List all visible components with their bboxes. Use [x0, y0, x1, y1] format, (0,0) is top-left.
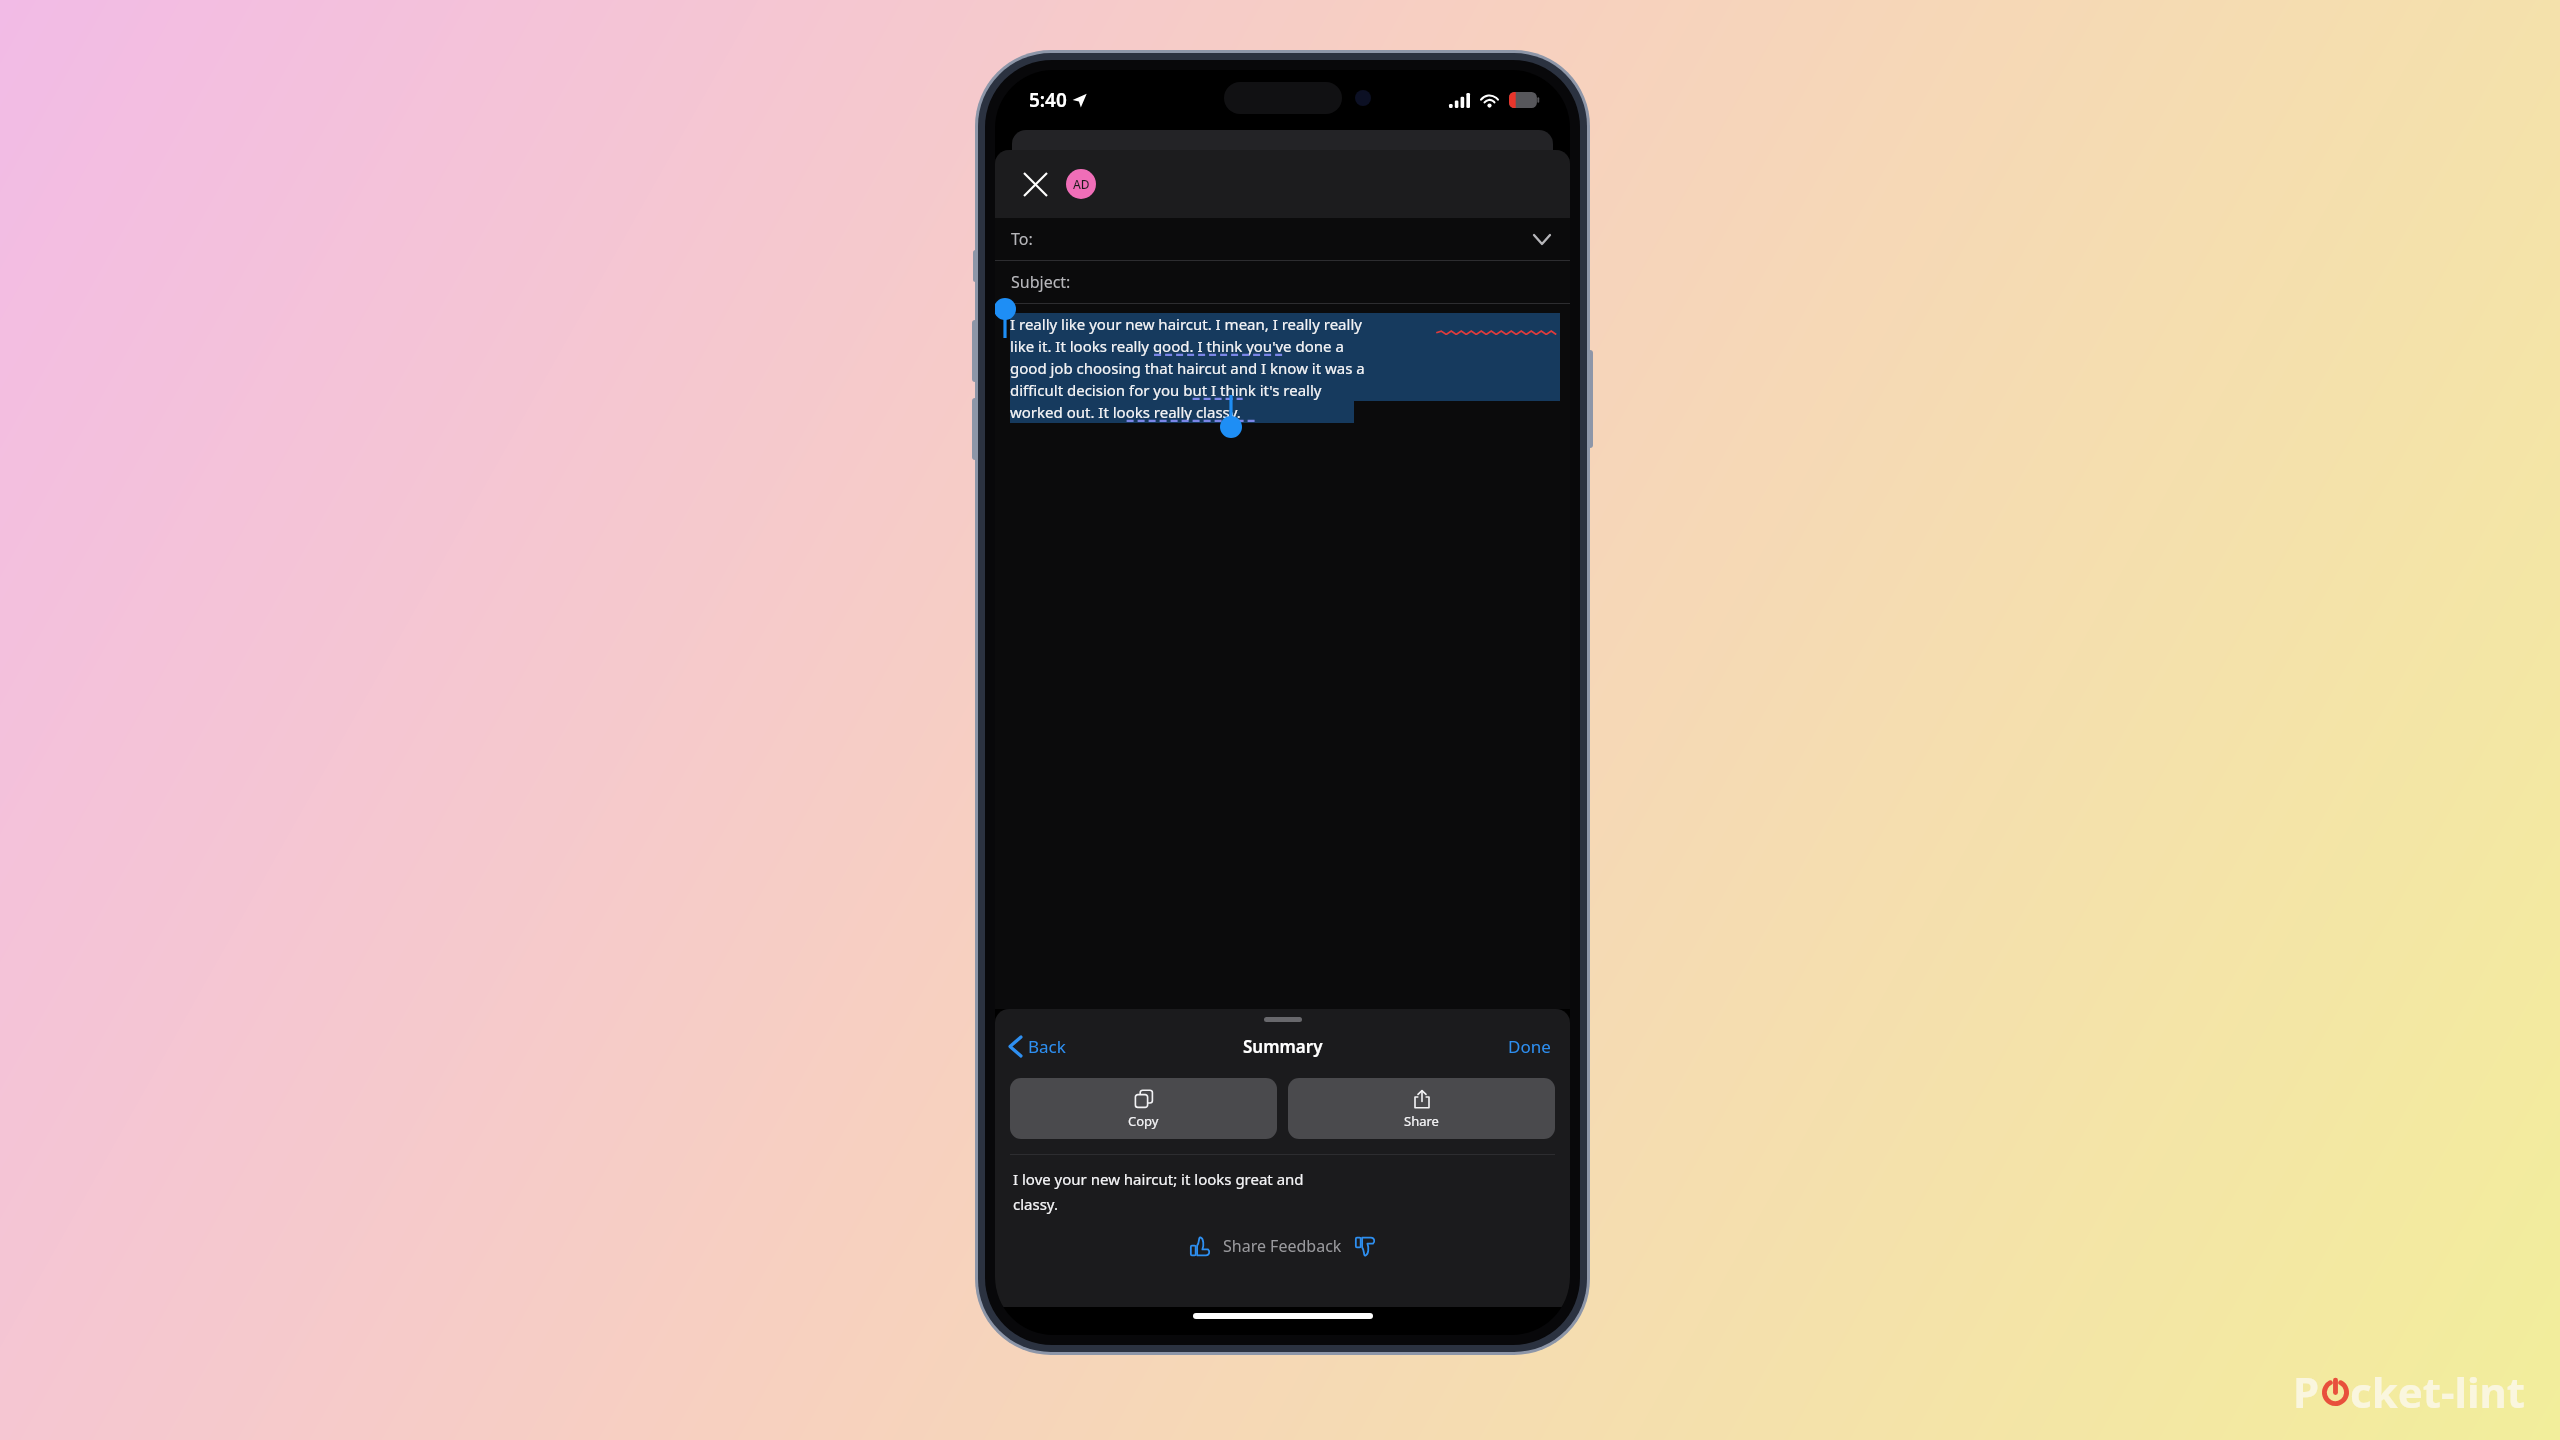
staticText: cket-lint: [2350, 1363, 2526, 1420]
staticText: like it. It looks really good. I think y…: [1010, 336, 1344, 356]
button[interactable]: Back: [1004, 1030, 1072, 1063]
staticText: I really like your new haircut. I mean, …: [1010, 314, 1362, 334]
staticText: Back: [1028, 1035, 1066, 1058]
staticText: P: [2293, 1363, 2320, 1420]
button[interactable]: Thumbs up: [1185, 1231, 1215, 1261]
staticText: worked out. It looks really classy.: [1010, 402, 1241, 422]
button[interactable]: Done: [1502, 1030, 1557, 1063]
button[interactable]: Close: [1015, 164, 1055, 204]
staticText: Share Feedback: [1223, 1235, 1342, 1257]
button[interactable]: Account AD: [1066, 169, 1096, 199]
staticText: I love your new haircut; it looks great …: [1013, 1169, 1304, 1189]
button[interactable]: Thumbs down: [1350, 1231, 1380, 1261]
staticText: Subject:: [1011, 271, 1071, 293]
staticText: classy.: [1013, 1194, 1058, 1214]
staticText: Share: [1404, 1112, 1439, 1130]
button[interactable]: Share: [1288, 1078, 1555, 1139]
staticText: Copy: [1128, 1112, 1159, 1130]
button[interactable]: Copy: [1010, 1078, 1277, 1139]
button[interactable]: To:: [995, 218, 1570, 260]
staticText: difficult decision for you but I think i…: [1010, 380, 1322, 400]
staticText: Summary: [1243, 1035, 1323, 1058]
staticText: 5:40: [1029, 87, 1067, 113]
staticText: AD: [1073, 176, 1090, 192]
staticText: To:: [1011, 228, 1033, 250]
button[interactable]: Subject:: [995, 261, 1570, 303]
staticText: Done: [1508, 1035, 1551, 1058]
staticText: good job choosing that haircut and I kno…: [1010, 358, 1365, 378]
